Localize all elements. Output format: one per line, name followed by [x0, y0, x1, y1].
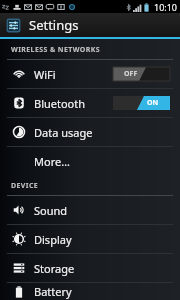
staticText: Sound	[34, 203, 68, 218]
staticText: More…	[34, 154, 70, 169]
staticText: Settings	[29, 16, 79, 34]
button[interactable]: Sound	[0, 196, 180, 224]
button[interactable]: Battery	[0, 283, 180, 300]
staticText: WiFi	[34, 67, 56, 82]
staticText: Bluetooth	[34, 96, 86, 111]
staticText: Battery	[34, 284, 72, 299]
staticText: ON	[147, 98, 159, 108]
button[interactable]: More…	[0, 147, 180, 175]
button[interactable]: Data usage	[0, 118, 180, 146]
staticText: Storage	[34, 261, 75, 276]
button[interactable]: Storage	[0, 254, 180, 282]
button[interactable]: Bluetooth toggle, on	[113, 96, 170, 110]
staticText: Display	[34, 232, 72, 247]
button[interactable]: WiFi toggle, off	[113, 67, 170, 81]
staticText: 10:10	[154, 1, 178, 13]
button[interactable]: Bluetooth	[0, 89, 180, 117]
button[interactable]: Display	[0, 225, 180, 253]
staticText: Data usage	[34, 125, 93, 140]
button[interactable]: Settings	[0, 13, 180, 37]
button[interactable]: WiFi	[0, 60, 180, 88]
staticText: OFF	[124, 69, 138, 79]
staticText: WIRELESS & NETWORKS	[11, 45, 101, 55]
staticText: DEVICE	[11, 181, 39, 191]
